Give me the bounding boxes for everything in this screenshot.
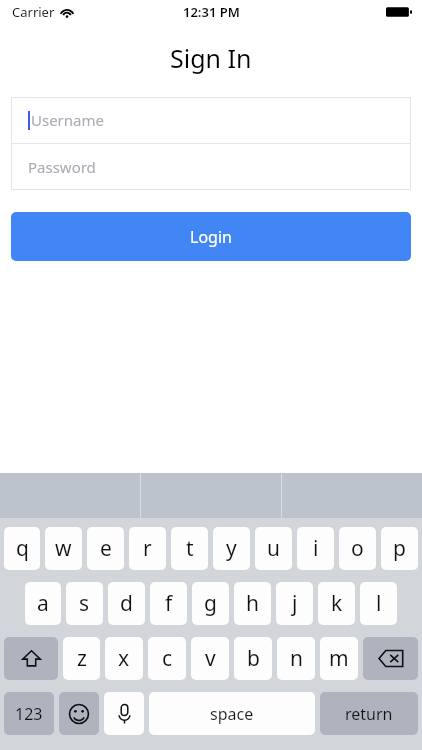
button[interactable]: i: [297, 527, 334, 570]
staticText: k: [331, 589, 343, 618]
button[interactable]: Shift: [4, 637, 58, 680]
button[interactable]: 123: [4, 692, 54, 735]
button[interactable]: Login: [11, 212, 411, 261]
button[interactable]: m: [320, 637, 358, 680]
staticText: g: [204, 589, 217, 618]
staticText: u: [267, 534, 280, 563]
staticText: n: [290, 644, 303, 673]
staticText: e: [100, 534, 112, 563]
button[interactable]: z: [63, 637, 100, 680]
button[interactable]: v: [191, 637, 229, 680]
staticText: v: [205, 644, 216, 673]
staticText: t: [186, 534, 194, 563]
button[interactable]: n: [277, 637, 315, 680]
button[interactable]: a: [25, 582, 61, 625]
button[interactable]: j: [276, 582, 313, 625]
staticText: d: [120, 589, 133, 618]
staticText: q: [16, 534, 29, 563]
button[interactable]: r: [129, 527, 166, 570]
button[interactable]: y: [213, 527, 250, 570]
staticText: o: [351, 534, 364, 563]
staticText: w: [55, 534, 72, 563]
staticText: p: [393, 534, 406, 563]
button[interactable]: Username: [11, 97, 411, 143]
button[interactable]: p: [381, 527, 418, 570]
staticText: return: [345, 703, 393, 725]
staticText: s: [79, 589, 90, 618]
staticText: 12:31 PM: [183, 3, 240, 21]
button[interactable]: Voice input: [104, 692, 144, 735]
button[interactable]: Backspace: [363, 637, 418, 680]
button[interactable]: return: [320, 692, 418, 735]
button[interactable]: space: [149, 692, 315, 735]
staticText: b: [247, 644, 260, 673]
staticText: x: [118, 644, 130, 673]
button[interactable]: g: [192, 582, 229, 625]
staticText: Carrier: [12, 3, 55, 21]
button[interactable]: Emoji: [59, 692, 99, 735]
staticText: z: [77, 644, 87, 673]
button[interactable]: Password: [11, 144, 411, 190]
button[interactable]: s: [66, 582, 103, 625]
staticText: 123: [15, 703, 43, 725]
button[interactable]: o: [339, 527, 376, 570]
button[interactable]: x: [105, 637, 143, 680]
staticText: Login: [190, 226, 232, 248]
staticText: Username: [31, 110, 104, 130]
staticText: i: [313, 534, 319, 563]
staticText: h: [246, 589, 259, 618]
button[interactable]: d: [108, 582, 145, 625]
staticText: space: [210, 703, 254, 725]
button[interactable]: f: [150, 582, 187, 625]
button[interactable]: l: [360, 582, 397, 625]
staticText: c: [162, 644, 173, 673]
staticText: a: [37, 589, 49, 618]
button[interactable]: w: [45, 527, 82, 570]
button[interactable]: b: [234, 637, 272, 680]
button[interactable]: t: [171, 527, 208, 570]
staticText: l: [376, 589, 382, 618]
button[interactable]: e: [87, 527, 124, 570]
staticText: m: [329, 644, 349, 673]
button[interactable]: h: [234, 582, 271, 625]
staticText: y: [226, 534, 237, 563]
staticText: Password: [28, 157, 96, 177]
staticText: r: [143, 534, 152, 563]
staticText: f: [165, 589, 173, 618]
button[interactable]: u: [255, 527, 292, 570]
button[interactable]: c: [148, 637, 186, 680]
staticText: j: [292, 589, 298, 618]
staticText: Sign In: [170, 41, 252, 75]
button[interactable]: q: [4, 527, 40, 570]
button[interactable]: k: [318, 582, 355, 625]
